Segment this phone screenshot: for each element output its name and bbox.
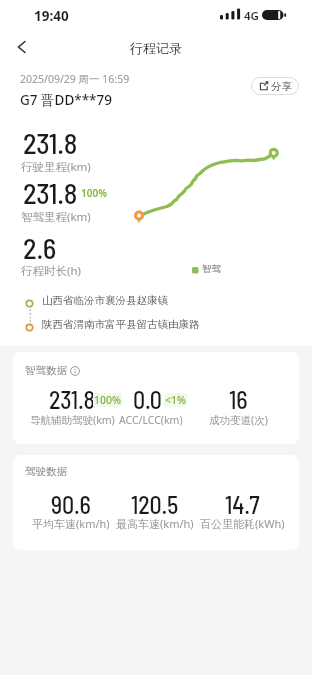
staticText: 最高车速(km/h) [116,516,194,531]
staticText: 2025/09/29 周一 16:59 [20,72,130,86]
staticText: 4G [244,8,259,24]
staticText: <1% [165,393,186,407]
staticText: 14.7 [225,490,260,519]
staticText: 陕西省渭南市富平县留古镇由康路 [42,318,200,331]
staticText: 导航辅助驾驶(km) [30,413,115,427]
staticText: 0.0 [133,385,162,414]
staticText: 120.5 [131,490,179,519]
staticText: 山西省临汾市襄汾县赵康镇 [42,294,168,307]
staticText: 智驾里程(km) [21,209,91,225]
staticText: 90.6 [51,490,91,519]
staticText: 分享 [271,80,292,93]
button[interactable] [10,36,34,58]
staticText: 19:40 [34,7,69,25]
staticText: 行程记录 [130,40,182,56]
staticText: 16 [229,385,248,414]
button[interactable]: 分享 [251,77,299,95]
staticText: 2.6 [23,230,57,264]
staticText: 行驶里程(km) [21,159,91,175]
staticText: 智驾数据 [25,364,67,377]
staticText: 100% [94,393,121,407]
staticText: 成功变道(次) [209,413,268,427]
staticText: 231.8 [49,385,95,414]
staticText: 平均车速(km/h) [32,516,110,531]
staticText: 100% [81,186,107,200]
staticText: 百公里能耗(kWh) [200,516,285,531]
staticText: 231.8 [23,125,78,159]
staticText: ACC/LCC(km) [119,413,183,427]
staticText: G7 晋DD***79 [20,91,112,109]
staticText: 行程时长(h) [21,263,82,279]
staticText: 231.8 [23,175,78,209]
staticText: 智驾 [202,263,221,275]
staticText: 驾驶数据 [25,465,67,478]
